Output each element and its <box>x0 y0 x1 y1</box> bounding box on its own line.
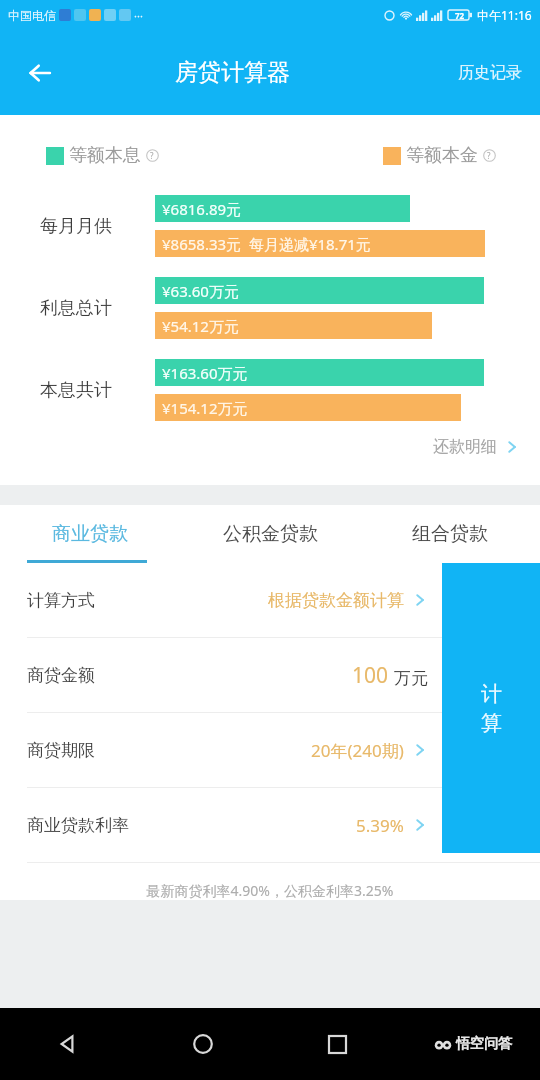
staticText: 历史记录 <box>458 63 522 83</box>
staticText: 商贷金额 <box>27 665 95 686</box>
staticText: 计算方式 <box>27 590 95 611</box>
staticText: 20年(240期) <box>311 739 404 762</box>
button[interactable]: 商贷期限 <box>0 713 540 787</box>
button[interactable]: 公积金贷款 <box>180 505 360 563</box>
staticText: 等额本金 <box>406 144 478 167</box>
staticText: 最新商贷利率4.90%，公积金利率3.25% <box>0 881 540 900</box>
staticText: ? <box>487 150 491 161</box>
staticText: ¥163.60万元 <box>162 363 248 383</box>
staticText: 中国电信 <box>8 8 56 23</box>
staticText: 公积金贷款 <box>223 522 318 546</box>
button[interactable]: Recent apps <box>270 1008 405 1080</box>
staticText: 本息共计 <box>40 379 112 402</box>
staticText: 根据贷款金额计算 <box>268 590 404 611</box>
staticText: 组合贷款 <box>412 522 488 546</box>
staticText: 悟空问答 <box>456 1035 512 1053</box>
staticText: 商贷期限 <box>27 740 95 761</box>
button[interactable]: 计 <box>442 563 540 853</box>
staticText: 72 <box>455 10 465 21</box>
staticText: 算 <box>481 710 502 736</box>
staticText: ? <box>150 150 154 161</box>
staticText: 每月月供 <box>40 215 112 238</box>
staticText: 还款明细 <box>433 437 497 457</box>
button[interactable]: 历史记录 <box>440 53 540 93</box>
staticText: ¥54.12万元 <box>162 316 239 336</box>
button[interactable]: 商业贷款 <box>0 505 180 563</box>
staticText: 100 <box>352 661 389 690</box>
button[interactable]: Home <box>135 1008 270 1080</box>
staticText: 商业贷款 <box>52 522 128 546</box>
staticText: ¥63.60万元 <box>162 281 239 301</box>
button[interactable]: 计算方式 <box>0 563 540 637</box>
button[interactable]: Back <box>18 51 62 95</box>
staticText: 等额本息 <box>69 144 141 167</box>
button[interactable]: 等额本金 <box>381 142 502 169</box>
staticText: 利息总计 <box>40 297 112 320</box>
staticText: ··· <box>134 8 143 23</box>
staticText: 5.39% <box>356 814 404 837</box>
button[interactable]: 商业贷款利率 <box>0 788 540 862</box>
staticText: 商业贷款利率 <box>27 815 129 836</box>
staticText: 万元 <box>394 668 428 689</box>
button[interactable]: 商贷金额 <box>0 638 540 712</box>
staticText: 计 <box>481 681 502 707</box>
staticText: 中午11:16 <box>477 7 532 23</box>
staticText: ¥154.12万元 <box>162 398 248 418</box>
staticText: ¥8658.33元 每月递减¥18.71元 <box>162 234 371 254</box>
button[interactable]: 组合贷款 <box>360 505 540 563</box>
button[interactable]: 等额本息 <box>44 142 165 169</box>
button[interactable]: Back <box>0 1008 135 1080</box>
staticText: 房贷计算器 <box>175 58 290 87</box>
button[interactable]: 还款明细 <box>413 431 540 463</box>
staticText: ¥6816.89元 <box>162 199 242 219</box>
